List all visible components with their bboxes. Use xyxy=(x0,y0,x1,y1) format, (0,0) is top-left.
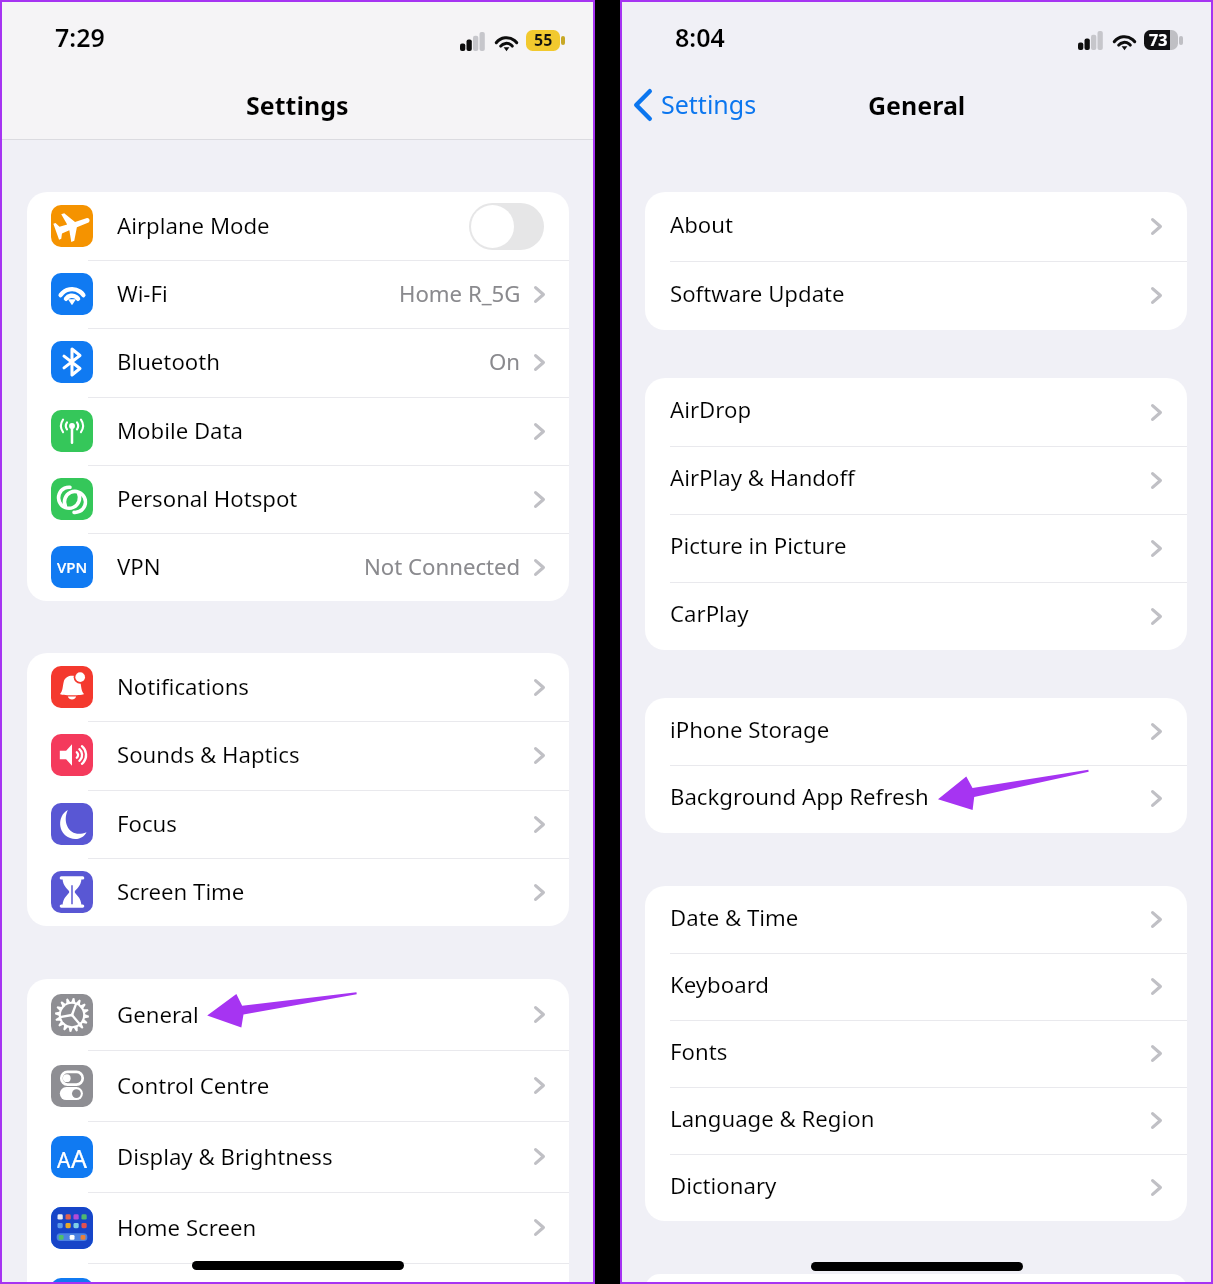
button[interactable]: Picture in Picture xyxy=(645,514,1187,582)
staticText: Focus xyxy=(117,808,177,838)
button[interactable]: Keyboard xyxy=(645,953,1187,1020)
button[interactable]: Bluetooth xyxy=(27,328,569,396)
staticText: Settings xyxy=(661,87,757,121)
button[interactable]: Software Update xyxy=(645,261,1187,330)
button[interactable]: General xyxy=(27,979,569,1050)
button[interactable]: Mobile Data xyxy=(27,397,569,465)
button[interactable]: Dictionary xyxy=(645,1154,1187,1221)
button[interactable]: iPhone Storage xyxy=(645,698,1187,765)
staticText: 7:29 xyxy=(55,20,105,54)
staticText: A xyxy=(57,1146,71,1175)
button[interactable]: Focus xyxy=(27,790,569,858)
staticText: Not Connected xyxy=(364,551,521,581)
staticText: Wi-Fi xyxy=(117,278,168,308)
staticText: VPN xyxy=(57,557,88,577)
staticText: Control Centre xyxy=(117,1070,270,1100)
staticText: Mobile Data xyxy=(117,415,244,445)
staticText: iPhone Storage xyxy=(670,714,830,744)
staticText: Notifications xyxy=(117,671,249,701)
button[interactable]: Back xyxy=(630,86,761,124)
staticText: CarPlay xyxy=(670,598,749,628)
staticText: Display & Brightness xyxy=(117,1141,333,1171)
button[interactable]: About xyxy=(645,192,1187,261)
staticText: A xyxy=(71,1141,87,1175)
button[interactable]: Screen Time xyxy=(27,858,569,926)
button[interactable]: Personal Hotspot xyxy=(27,465,569,533)
staticText: Keyboard xyxy=(670,969,769,999)
staticText: Fonts xyxy=(670,1036,728,1066)
staticText: Date & Time xyxy=(670,902,799,932)
staticText: Home Screen xyxy=(117,1212,257,1242)
button[interactable]: Control Centre xyxy=(27,1050,569,1121)
staticText: General xyxy=(117,999,199,1029)
staticText: Background App Refresh xyxy=(670,781,929,811)
staticText: 8:04 xyxy=(675,20,725,54)
button[interactable]: AirPlay & Handoff xyxy=(645,446,1187,514)
button[interactable]: Notifications xyxy=(27,653,569,721)
other: Back xyxy=(634,89,652,121)
button[interactable]: Background App Refresh xyxy=(645,765,1187,832)
button[interactable]: AirDrop xyxy=(645,378,1187,446)
button[interactable]: Accessibility xyxy=(27,1263,569,1282)
staticText: Language & Region xyxy=(670,1103,875,1133)
staticText: On xyxy=(489,346,521,376)
button[interactable]: Sounds & Haptics xyxy=(27,721,569,789)
button[interactable]: A xyxy=(27,1121,569,1192)
staticText: Software Update xyxy=(670,278,845,308)
staticText: Home R_5G xyxy=(399,278,521,308)
staticText: Airplane Mode xyxy=(117,210,270,240)
staticText: About xyxy=(670,209,733,239)
staticText: Screen Time xyxy=(117,876,245,906)
staticText: Settings xyxy=(246,88,349,122)
staticText: AirDrop xyxy=(670,394,752,424)
button[interactable]: Language & Region xyxy=(645,1087,1187,1154)
staticText: Picture in Picture xyxy=(670,530,847,560)
staticText: Dictionary xyxy=(670,1170,777,1200)
staticText: AirPlay & Handoff xyxy=(670,462,855,492)
staticText: 73 xyxy=(1149,29,1168,49)
staticText: Personal Hotspot xyxy=(117,483,298,513)
staticText: 55 xyxy=(534,30,553,50)
staticText: General xyxy=(868,88,966,122)
staticText: Bluetooth xyxy=(117,346,220,376)
button[interactable]: Airplane Mode toggle xyxy=(469,203,544,250)
button[interactable]: Home Screen xyxy=(27,1192,569,1263)
button[interactable]: Airplane Mode xyxy=(27,192,569,260)
button[interactable]: Wi-Fi xyxy=(27,260,569,328)
button[interactable]: CarPlay xyxy=(645,582,1187,650)
staticText: VPN xyxy=(117,551,161,581)
button[interactable]: Fonts xyxy=(645,1020,1187,1087)
staticText: Sounds & Haptics xyxy=(117,739,300,769)
button[interactable]: Date & Time xyxy=(645,886,1187,953)
button[interactable]: VPN xyxy=(27,533,569,601)
